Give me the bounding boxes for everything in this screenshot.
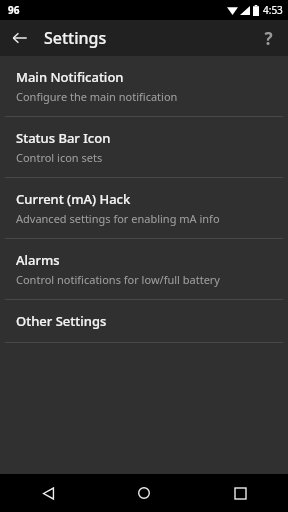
staticText: Main Notification	[16, 68, 124, 86]
staticText: Configure the main notification	[16, 89, 178, 104]
staticText: Control icon sets	[16, 150, 103, 165]
button[interactable]: Status Bar Icon	[0, 117, 288, 177]
button[interactable]: Back	[6, 24, 34, 52]
staticText: Settings	[44, 27, 107, 49]
button[interactable]: Home	[122, 474, 166, 512]
button[interactable]: Back	[26, 474, 70, 512]
staticText: Status Bar Icon	[16, 129, 111, 147]
staticText: Current (mA) Hack	[16, 190, 131, 208]
staticText: Other Settings	[16, 312, 107, 330]
button[interactable]: Main Notification	[0, 56, 288, 116]
button[interactable]: Recent apps	[218, 474, 262, 512]
staticText: Alarms	[16, 251, 60, 269]
staticText: ?	[264, 27, 273, 50]
staticText: 96	[8, 3, 20, 17]
staticText: 4:53	[263, 3, 283, 17]
staticText: Control notifications for low/full batte…	[16, 272, 220, 287]
button[interactable]: Alarms	[0, 239, 288, 299]
button[interactable]: Help	[254, 24, 282, 52]
button[interactable]: Current (mA) Hack	[0, 178, 288, 238]
staticText: Advanced settings for enabling mA info	[16, 211, 220, 226]
button[interactable]: Other Settings	[0, 300, 288, 342]
